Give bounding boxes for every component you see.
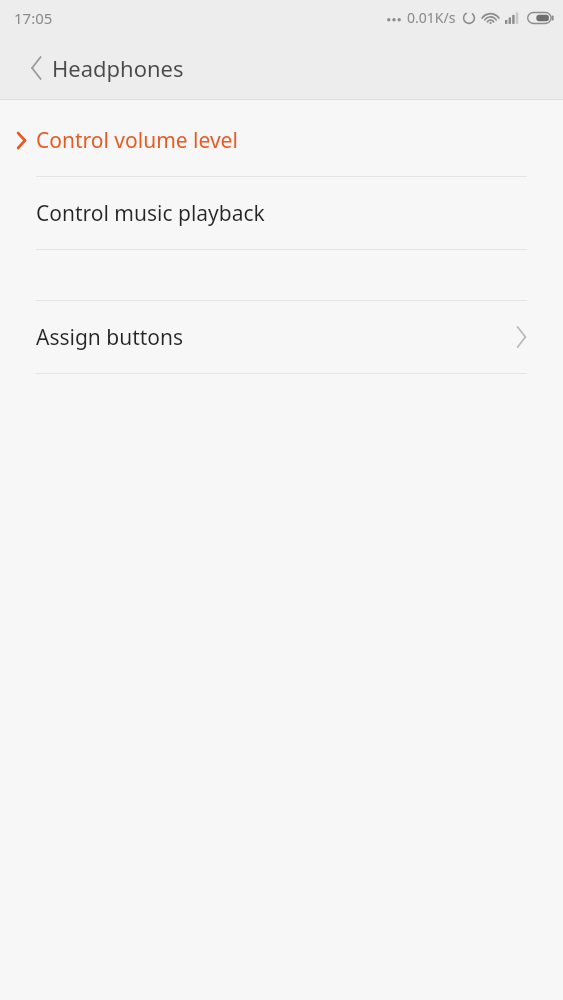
button[interactable]: Control volume level: [0, 104, 563, 176]
staticText: 17:05: [14, 8, 53, 28]
button[interactable]: Assign buttons: [0, 301, 563, 373]
staticText: Control music playback: [36, 199, 265, 228]
staticText: Assign buttons: [36, 323, 184, 352]
button[interactable]: Control music playback: [0, 177, 563, 249]
staticText: Headphones: [52, 53, 184, 83]
button[interactable]: Back: [12, 44, 60, 92]
staticText: Control volume level: [36, 126, 238, 155]
staticText: 0.01K/s: [407, 8, 456, 27]
